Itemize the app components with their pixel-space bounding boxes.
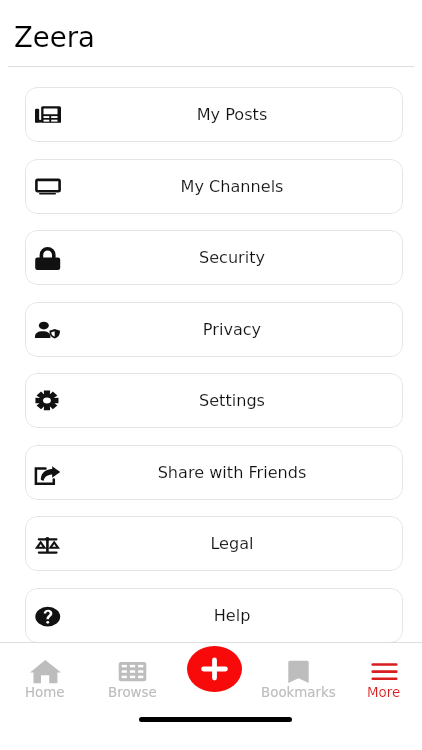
button[interactable]: Legal — [25, 516, 403, 571]
staticText: Browse — [108, 685, 157, 701]
staticText: Privacy — [61, 320, 403, 339]
button[interactable]: Home — [3, 656, 87, 701]
button[interactable]: Share with Friends — [25, 445, 403, 500]
staticText: Settings — [61, 391, 403, 410]
staticText: Share with Friends — [61, 463, 403, 482]
button[interactable]: Help — [25, 588, 403, 643]
staticText: Home — [25, 685, 65, 701]
staticText: Zeera — [14, 21, 95, 53]
button[interactable]: My Posts — [25, 87, 403, 142]
staticText: Help — [61, 606, 403, 625]
staticText: Security — [61, 248, 403, 267]
button[interactable]: Add new post — [187, 646, 242, 692]
button[interactable]: Privacy — [25, 302, 403, 357]
staticText: My Posts — [61, 105, 403, 124]
button[interactable]: More — [342, 656, 422, 701]
button[interactable]: Security — [25, 230, 403, 285]
staticText: Legal — [61, 534, 403, 553]
button[interactable]: My Channels — [25, 159, 403, 214]
staticText: My Channels — [61, 177, 403, 196]
button[interactable]: Settings — [25, 373, 403, 428]
button[interactable]: Bookmarks — [256, 656, 340, 701]
staticText: Bookmarks — [261, 685, 336, 701]
staticText: More — [367, 685, 401, 701]
button[interactable]: Browse — [90, 656, 174, 701]
